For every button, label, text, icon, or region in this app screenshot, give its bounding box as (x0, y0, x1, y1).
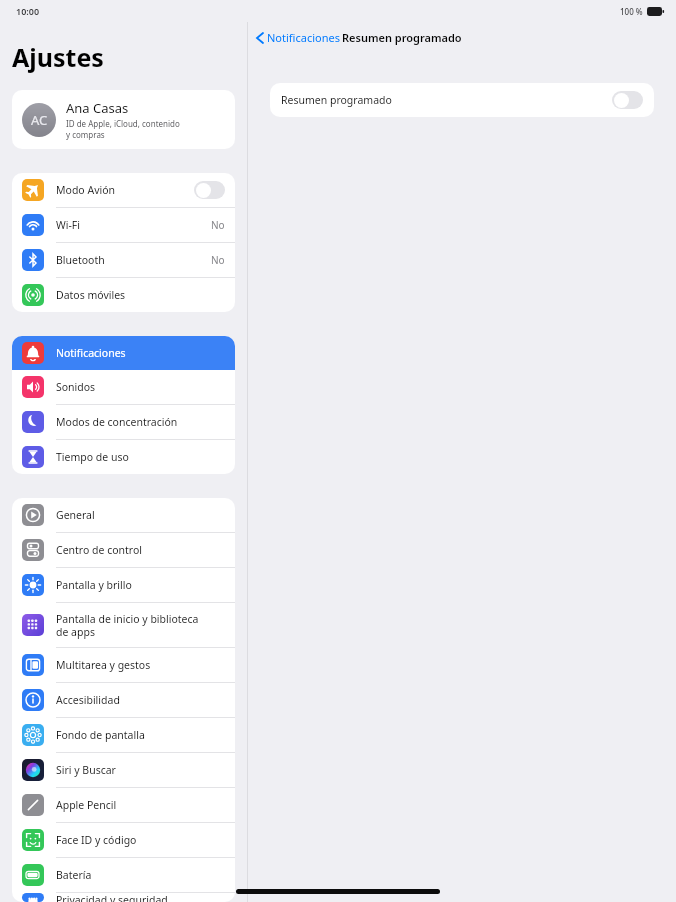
staticText: Face ID y código (56, 833, 225, 847)
staticText: ID de Apple, iCloud, contenido y compras (66, 118, 180, 140)
staticText: Notificaciones (56, 346, 225, 360)
staticText: Centro de control (56, 543, 225, 557)
staticText: Privacidad y seguridad (56, 893, 225, 902)
button[interactable]: Accesibilidad (12, 683, 235, 717)
button[interactable]: Datos móviles (12, 278, 235, 312)
staticText: Modos de concentración (56, 415, 225, 429)
staticText: Resumen programado (342, 30, 462, 45)
staticText: Datos móviles (56, 288, 225, 302)
button[interactable]: General (12, 498, 235, 532)
staticText: Batería (56, 868, 225, 882)
button[interactable]: Activar (612, 91, 643, 109)
button[interactable]: Modo Avión (12, 173, 235, 207)
staticText: Ajustes (12, 40, 104, 74)
staticText: 100 % (620, 6, 643, 17)
staticText: No (211, 253, 225, 267)
button[interactable]: Wi-Fi (12, 208, 235, 242)
staticText: Pantalla de inicio y biblioteca de apps (56, 612, 225, 639)
staticText: Accesibilidad (56, 693, 225, 707)
staticText: Wi-Fi (56, 218, 211, 232)
button[interactable]: Pantalla y brillo (12, 568, 235, 602)
button[interactable]: AC (12, 90, 235, 149)
staticText: Pantalla y brillo (56, 578, 225, 592)
button[interactable]: Fondo de pantalla (12, 718, 235, 752)
button[interactable]: Tiempo de uso (12, 440, 235, 474)
staticText: 10:00 (16, 5, 40, 17)
button[interactable]: Bluetooth (12, 243, 235, 277)
button[interactable]: Siri y Buscar (12, 753, 235, 787)
staticText: Siri y Buscar (56, 763, 225, 777)
staticText: General (56, 508, 225, 522)
staticText: Apple Pencil (56, 798, 225, 812)
button[interactable]: Sonidos (12, 370, 235, 404)
button[interactable]: Resumen programado (270, 83, 654, 117)
staticText: Tiempo de uso (56, 450, 225, 464)
staticText: No (211, 218, 225, 232)
button[interactable]: Notificaciones (248, 26, 346, 49)
button[interactable]: Multitarea y gestos (12, 648, 235, 682)
button[interactable]: Activar (194, 181, 225, 199)
staticText: Sonidos (56, 380, 225, 394)
staticText: Ana Casas (66, 99, 129, 117)
staticText: Multitarea y gestos (56, 658, 225, 672)
button[interactable]: Apple Pencil (12, 788, 235, 822)
button[interactable]: Pantalla de inicio y biblioteca de apps (12, 603, 235, 647)
button[interactable]: Modos de concentración (12, 405, 235, 439)
button[interactable]: Batería (12, 858, 235, 892)
staticText: Modo Avión (56, 183, 194, 197)
button[interactable]: Face ID y código (12, 823, 235, 857)
button[interactable]: Privacidad y seguridad (12, 893, 235, 902)
button[interactable]: Centro de control (12, 533, 235, 567)
button[interactable]: Notificaciones (12, 336, 235, 370)
staticText: Resumen programado (281, 93, 612, 107)
staticText: AC (31, 111, 48, 129)
staticText: Notificaciones (267, 30, 340, 45)
staticText: Fondo de pantalla (56, 728, 225, 742)
staticText: Bluetooth (56, 253, 211, 267)
